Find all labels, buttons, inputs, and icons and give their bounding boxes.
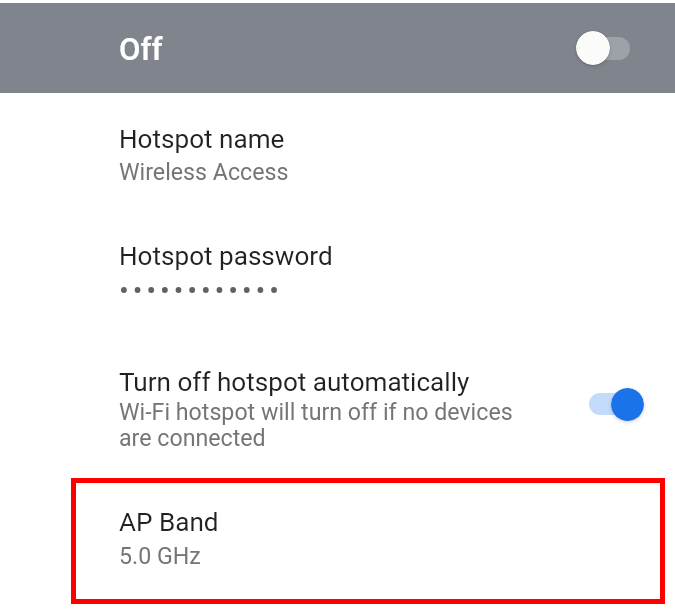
button[interactable]: AP Band [71,478,665,604]
staticText: Turn off hotspot automatically [119,367,470,397]
staticText: Hotspot name [119,124,285,154]
staticText: Wireless Access [119,160,289,186]
staticText: Wi-Fi hotspot will turn off if no device… [119,400,513,452]
button[interactable]: Hotspot password [0,237,675,302]
staticText: Hotspot password [119,241,333,271]
button[interactable]: Turn off hotspot automatically [0,363,675,460]
staticText: 5.0 GHz [119,544,201,570]
staticText: Off [119,31,163,67]
button[interactable]: Hotspot on off switch [562,22,648,74]
button[interactable]: Turn off hotspot automatically switch [589,378,648,430]
button[interactable]: Hotspot name [0,120,675,194]
staticText: AP Band [119,507,219,537]
